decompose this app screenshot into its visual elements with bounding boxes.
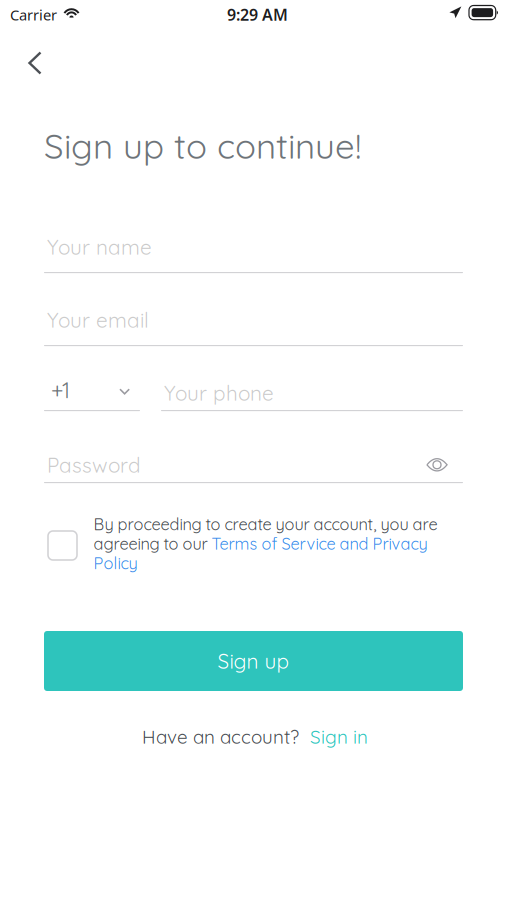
staticText: Sign up [217, 648, 289, 674]
staticText: Your email [47, 307, 149, 333]
staticText: Sign in [310, 725, 368, 748]
button[interactable]: Agree to terms [48, 531, 77, 560]
staticText: +1 [51, 376, 70, 404]
button[interactable]: Country code [48, 374, 130, 406]
button[interactable]: Back [12, 41, 58, 85]
staticText: 9:29 AM [227, 4, 288, 25]
button[interactable]: By proceeding to create your account, yo… [93, 514, 445, 573]
staticText: Have an account? [142, 725, 299, 748]
staticText: By proceeding to create your account, yo… [93, 514, 437, 573]
staticText: Password [47, 452, 141, 478]
button[interactable]: Sign up [44, 631, 463, 691]
staticText: Your name [47, 234, 152, 260]
button[interactable]: Show password [426, 457, 448, 473]
staticText: Your phone [164, 380, 274, 406]
staticText: Carrier [10, 5, 57, 24]
staticText: Sign up to continue! [44, 124, 361, 167]
button[interactable]: Sign in [310, 725, 368, 748]
